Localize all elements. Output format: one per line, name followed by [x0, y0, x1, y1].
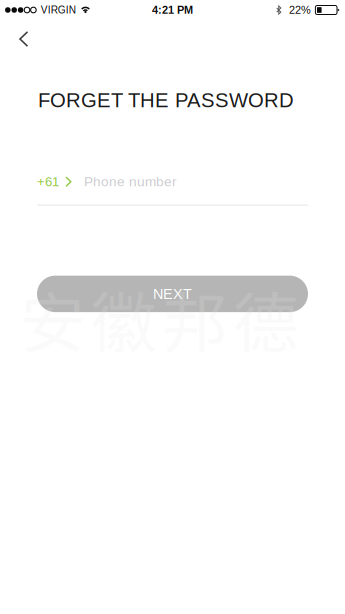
button[interactable]: Back	[0, 20, 45, 54]
staticText: Phone number	[84, 174, 177, 189]
staticText: 22%	[289, 4, 311, 16]
staticText: 4:21 PM	[152, 4, 193, 16]
staticText: NEXT	[153, 286, 192, 302]
button[interactable]: NEXT	[37, 276, 308, 312]
button[interactable]: +61	[37, 174, 72, 189]
staticText: +61	[37, 174, 59, 189]
staticText: VIRGIN	[41, 4, 76, 16]
staticText: 安徽邦德	[20, 271, 298, 366]
staticText: FORGET THE PASSWORD	[38, 89, 294, 112]
